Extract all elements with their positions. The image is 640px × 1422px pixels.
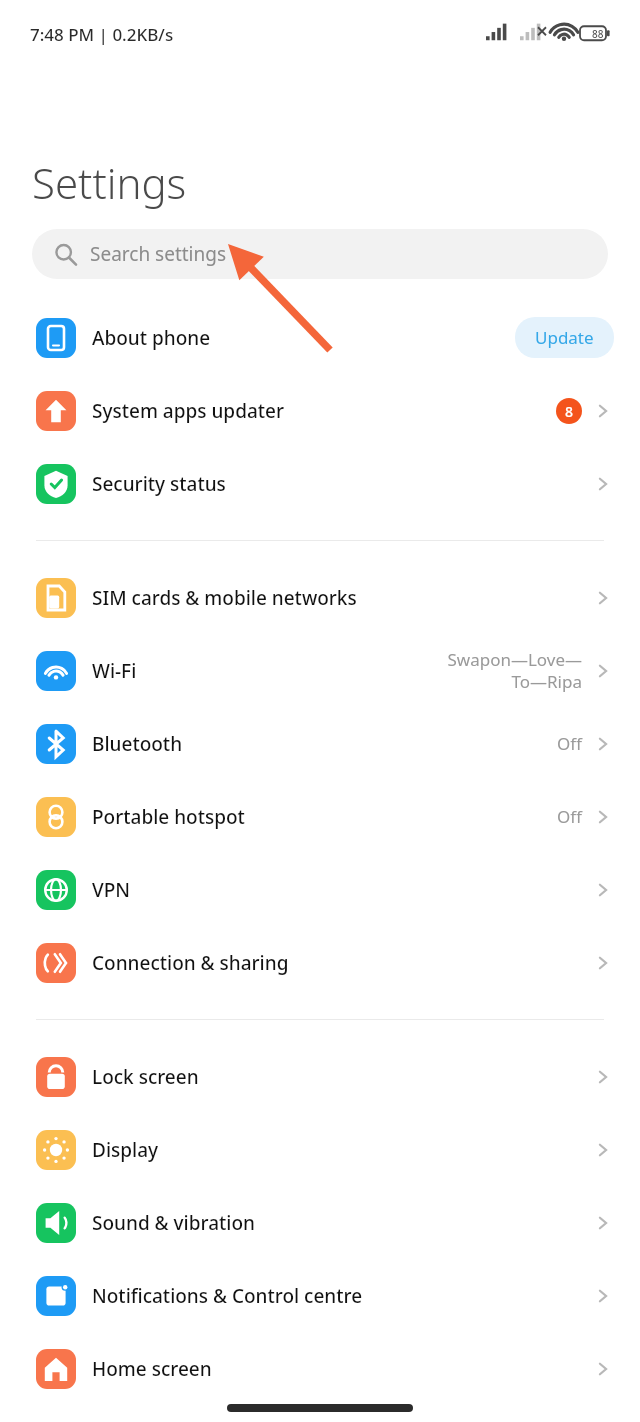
staticText: Bluetooth: [92, 731, 183, 757]
button[interactable]: About phone: [0, 301, 640, 374]
button[interactable]: System apps updater: [0, 374, 640, 447]
staticText: Wi-Fi: [92, 658, 137, 684]
staticText: Off: [557, 732, 582, 755]
button[interactable]: Lock screen: [0, 1040, 640, 1113]
staticText: Portable hotspot: [92, 804, 245, 830]
button[interactable]: Update: [515, 317, 614, 358]
button[interactable]: Bluetooth: [0, 707, 640, 780]
button[interactable]: Home screen: [0, 1332, 640, 1405]
staticText: About phone: [92, 325, 211, 351]
staticText: 8: [565, 402, 574, 421]
staticText: Update: [535, 326, 594, 349]
staticText: Search settings: [90, 241, 227, 267]
button[interactable]: Portable hotspot: [0, 780, 640, 853]
staticText: SIM cards & mobile networks: [92, 585, 357, 611]
staticText: Security status: [92, 471, 226, 497]
button[interactable]: SIM cards & mobile networks: [0, 561, 640, 634]
staticText: Sound & vibration: [92, 1210, 255, 1236]
button[interactable]: Sound & vibration: [0, 1186, 640, 1259]
button[interactable]: Search settings: [32, 229, 608, 279]
staticText: Swapon—Love— To—Ripa: [447, 648, 582, 693]
staticText: 7:48 PM | 0.2KB/s: [30, 23, 174, 46]
button[interactable]: Display: [0, 1113, 640, 1186]
button[interactable]: Security status: [0, 447, 640, 520]
staticText: Display: [92, 1137, 159, 1163]
staticText: Settings: [32, 154, 187, 211]
staticText: 88: [592, 27, 604, 41]
button[interactable]: Connection & sharing: [0, 926, 640, 999]
staticText: Connection & sharing: [92, 950, 289, 976]
staticText: Lock screen: [92, 1064, 199, 1090]
staticText: Home screen: [92, 1356, 212, 1382]
button[interactable]: VPN: [0, 853, 640, 926]
staticText: VPN: [92, 877, 131, 903]
button[interactable]: Wi-Fi: [0, 634, 640, 707]
staticText: System apps updater: [92, 398, 284, 424]
staticText: Notifications & Control centre: [92, 1283, 363, 1309]
button[interactable]: Notifications & Control centre: [0, 1259, 640, 1332]
staticText: Off: [557, 805, 582, 828]
